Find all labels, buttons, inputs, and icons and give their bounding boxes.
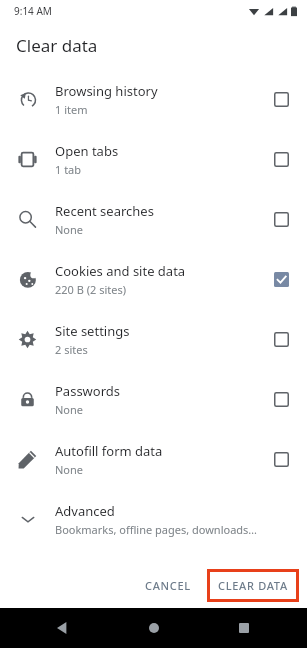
button[interactable]: Site settings xyxy=(0,309,307,369)
staticText: CANCEL xyxy=(145,578,191,593)
staticText: None xyxy=(55,402,84,417)
button[interactable]: Cookies and site data xyxy=(0,249,307,309)
staticText: Open tabs xyxy=(55,142,119,160)
button[interactable]: Unchecked xyxy=(255,129,307,189)
staticText: Bookmarks, offline pages, downloads… xyxy=(55,522,258,537)
staticText: None xyxy=(55,222,84,237)
staticText: Site settings xyxy=(55,322,130,340)
button[interactable]: Unchecked xyxy=(255,309,307,369)
button[interactable]: Checked xyxy=(255,249,307,309)
button[interactable]: CLEAR DATA xyxy=(210,572,296,599)
staticText: Cookies and site data xyxy=(55,262,186,280)
button[interactable]: Unchecked xyxy=(255,189,307,249)
staticText: Clear data xyxy=(16,34,98,57)
button[interactable]: Back xyxy=(48,613,78,643)
staticText: None xyxy=(55,462,84,477)
button[interactable]: Unchecked xyxy=(255,69,307,129)
button[interactable]: Recent searches xyxy=(0,189,307,249)
staticText: CLEAR DATA xyxy=(218,578,288,593)
staticText: Passwords xyxy=(55,382,121,400)
staticText: Browsing history xyxy=(55,82,158,100)
button[interactable]: Home xyxy=(139,613,169,643)
staticText: 1 item xyxy=(55,102,88,117)
staticText: Recent searches xyxy=(55,202,154,220)
staticText: Autofill form data xyxy=(55,442,163,460)
staticText: 1 tab xyxy=(55,162,82,177)
staticText: 9:14 AM xyxy=(14,4,52,18)
button[interactable]: Unchecked xyxy=(255,369,307,429)
staticText: 2 sites xyxy=(55,342,88,357)
button[interactable]: Advanced xyxy=(0,489,307,549)
button[interactable]: Unchecked xyxy=(255,429,307,489)
button[interactable]: Open tabs xyxy=(0,129,307,189)
staticText: Advanced xyxy=(55,502,115,520)
button[interactable]: CANCEL xyxy=(135,571,201,600)
button[interactable]: Autofill form data xyxy=(0,429,307,489)
button[interactable]: Passwords xyxy=(0,369,307,429)
button[interactable]: Recent apps xyxy=(229,613,259,643)
staticText: 220 B (2 sites) xyxy=(55,282,127,297)
button[interactable]: Browsing history xyxy=(0,69,307,129)
